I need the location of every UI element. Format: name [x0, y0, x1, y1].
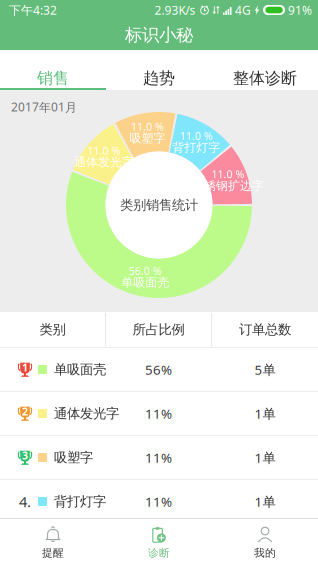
staticText: 56.0 %: [129, 264, 162, 278]
staticText: 4.: [19, 492, 31, 511]
staticText: 整体诊断: [233, 68, 297, 88]
staticText: 5单: [254, 361, 275, 378]
staticText: 1单: [254, 493, 275, 510]
button[interactable]: 2: [0, 392, 318, 435]
staticText: 趋势: [143, 68, 175, 88]
staticText: 类别: [39, 321, 65, 338]
staticText: 4G: [235, 2, 251, 18]
staticText: 91%: [288, 2, 312, 18]
button[interactable]: 诊断: [106, 519, 212, 566]
staticText: 类别销售统计: [120, 197, 198, 213]
staticText: 1单: [254, 405, 275, 422]
button[interactable]: 4.: [0, 480, 318, 523]
button[interactable]: 我的: [212, 519, 318, 566]
staticText: 11%: [145, 405, 172, 422]
staticText: 我的: [254, 546, 276, 559]
staticText: 订单总数: [239, 321, 291, 338]
button[interactable]: 销售: [0, 50, 106, 90]
staticText: 通体发光字: [74, 155, 134, 169]
staticText: 11.0 %: [88, 143, 121, 158]
staticText: 2.93K/s: [154, 2, 195, 18]
button[interactable]: 3: [0, 436, 318, 479]
staticText: 提醒: [42, 546, 64, 559]
staticText: 标识小秘: [125, 24, 193, 46]
button[interactable]: 趋势: [106, 50, 212, 90]
staticText: 诊断: [148, 546, 170, 559]
staticText: 背打灯字: [54, 493, 106, 510]
staticText: 11%: [145, 449, 172, 466]
staticText: 通体发光字: [54, 405, 119, 422]
staticText: 1单: [254, 449, 275, 466]
staticText: 销售: [37, 68, 69, 88]
button[interactable]: 提醒: [0, 519, 106, 566]
staticText: 3: [22, 448, 28, 462]
staticText: 单吸面壳: [54, 361, 106, 378]
staticText: 所占比例: [132, 321, 184, 338]
staticText: 11.0 %: [180, 129, 213, 143]
button[interactable]: 1: [0, 348, 318, 391]
staticText: 11%: [145, 493, 172, 510]
staticText: 2017年01月: [11, 99, 77, 115]
staticText: 11.0 %: [131, 120, 164, 134]
staticText: 背打灯字: [172, 140, 220, 155]
staticText: 不锈钢扩边字: [192, 178, 264, 193]
staticText: 11.0 %: [211, 167, 244, 181]
staticText: 2: [22, 404, 28, 418]
staticText: 1: [22, 360, 28, 374]
button[interactable]: 整体诊断: [212, 50, 318, 90]
staticText: 单吸面壳: [121, 275, 169, 290]
staticText: 56%: [145, 361, 172, 378]
staticText: 吸塑字: [129, 131, 165, 145]
staticText: 下午4:32: [9, 2, 57, 18]
staticText: 吸塑字: [54, 449, 93, 466]
